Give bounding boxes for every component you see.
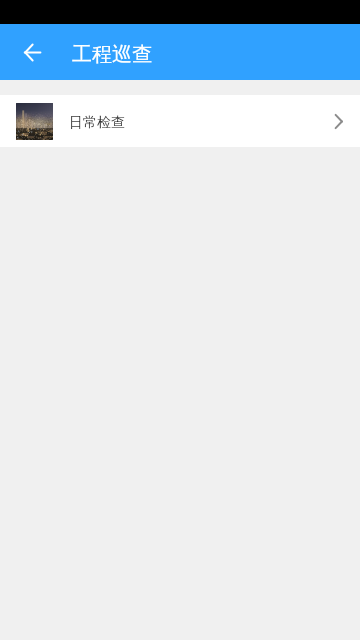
button[interactable]: 日常检查 [0,95,360,147]
staticText: 日常检查 [69,114,125,132]
button[interactable]: Back [12,32,52,72]
staticText: 工程巡查 [72,42,152,67]
